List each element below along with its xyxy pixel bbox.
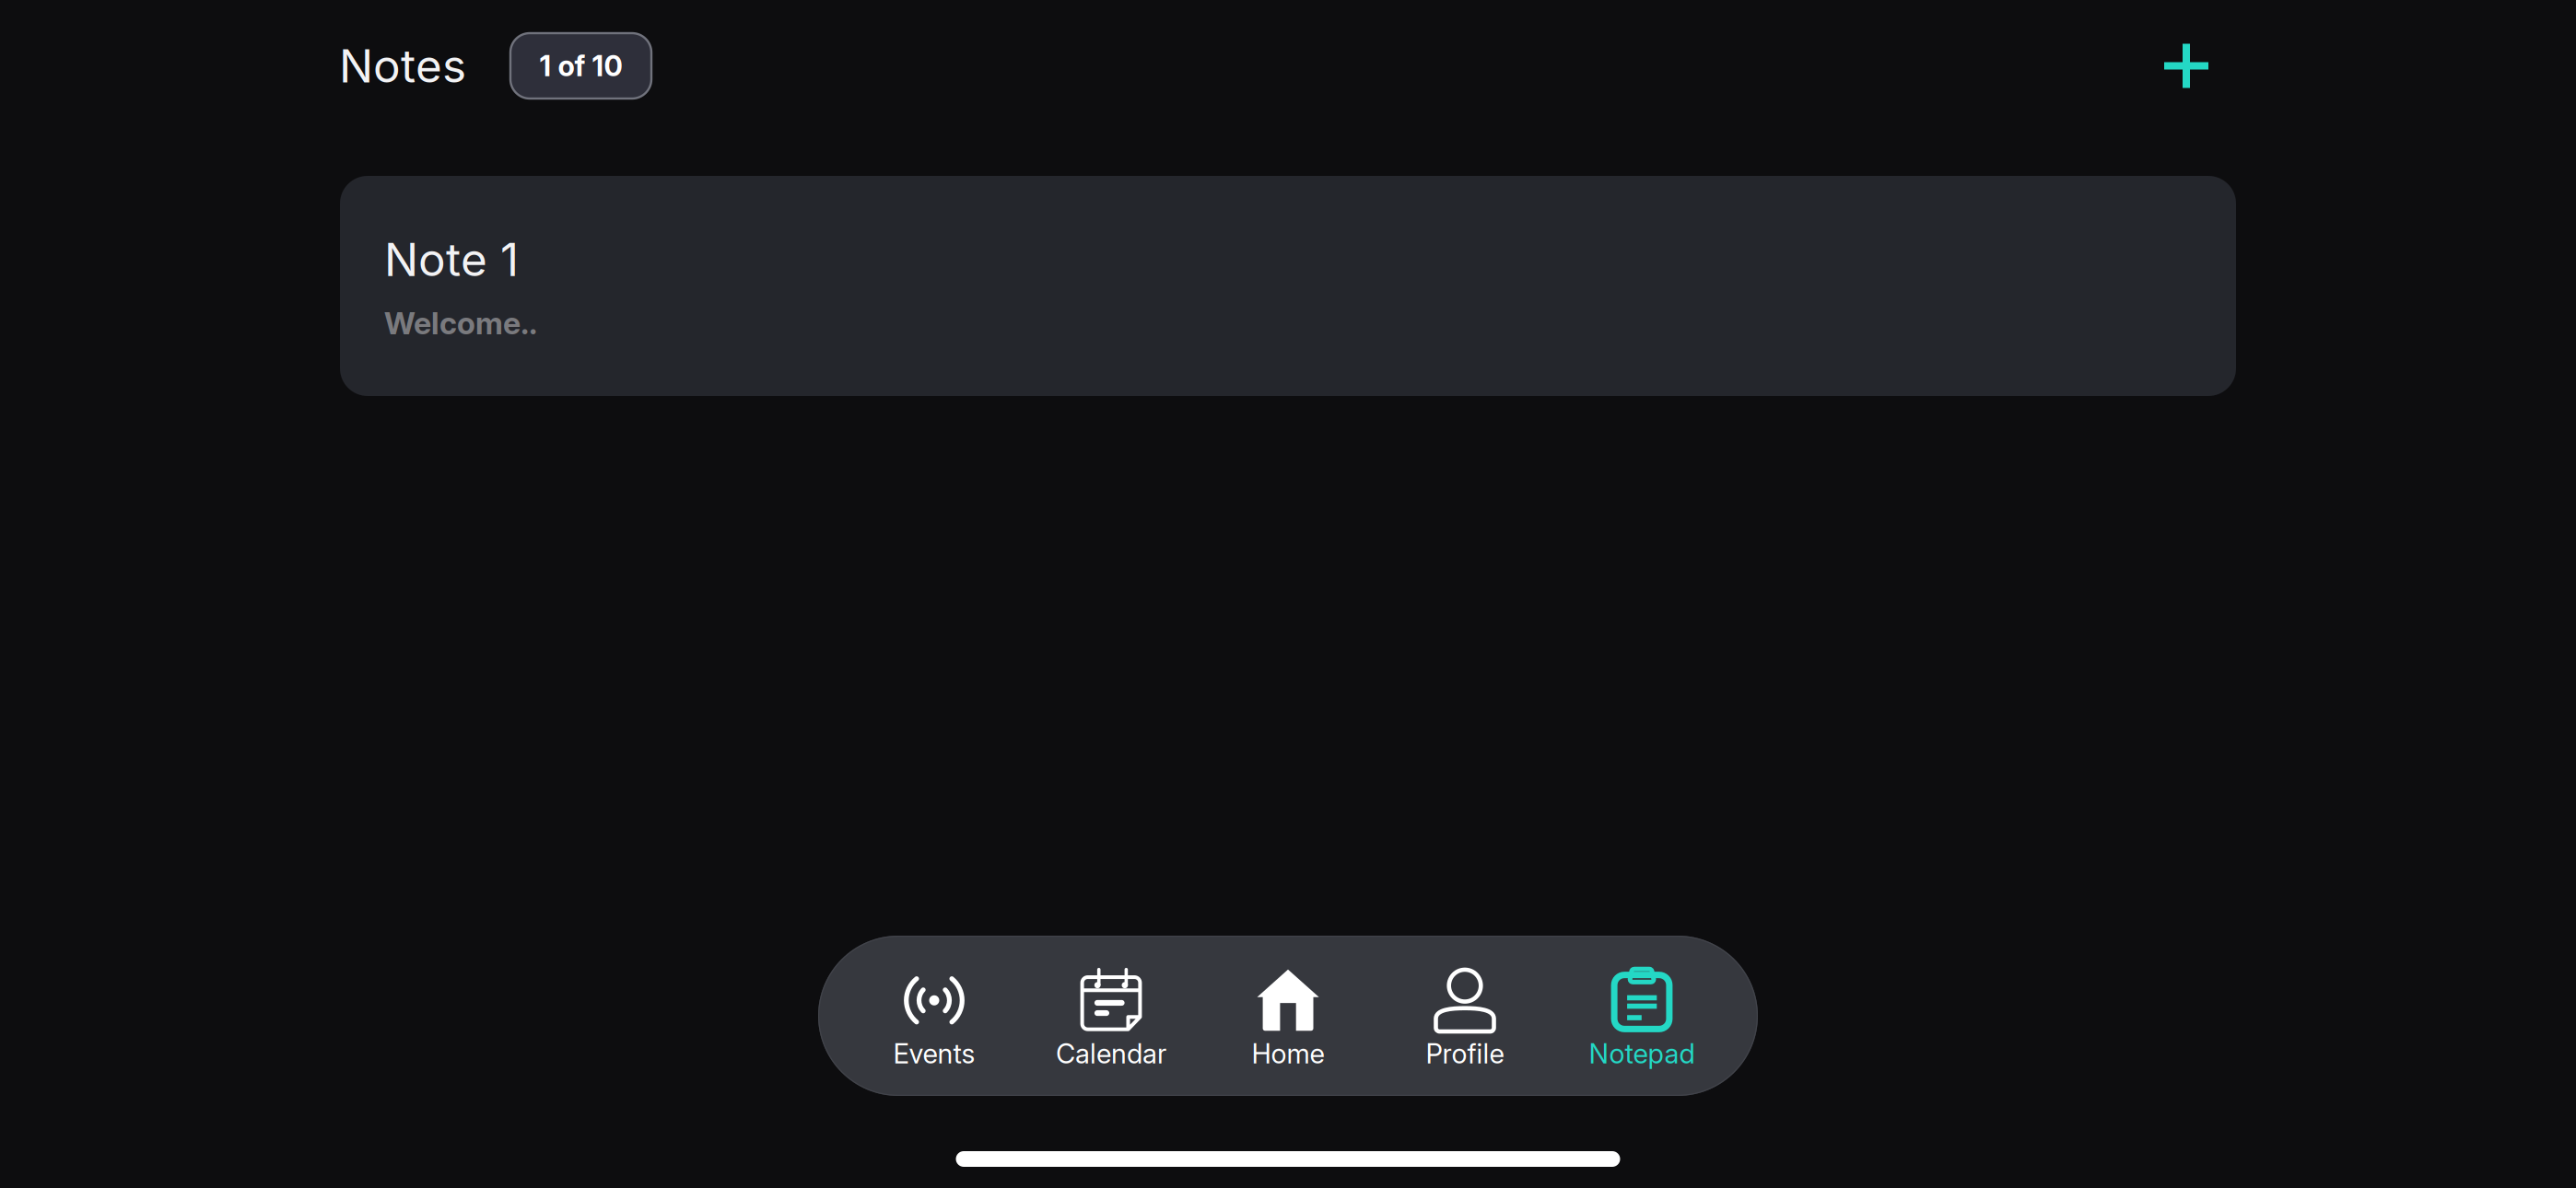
- staticText: Profile: [1426, 1037, 1504, 1070]
- button[interactable]: Calendar: [1023, 936, 1200, 1096]
- button[interactable]: Profile: [1376, 936, 1553, 1096]
- staticText: Calendar: [1056, 1037, 1166, 1070]
- staticText: 1 of 10: [539, 49, 622, 83]
- button[interactable]: 1 of 10: [510, 33, 651, 99]
- button[interactable]: Notepad: [1553, 936, 1730, 1096]
- staticText: Events: [893, 1037, 975, 1070]
- staticText: Notes: [339, 38, 466, 93]
- staticText: Notepad: [1589, 1037, 1695, 1070]
- button[interactable]: Note 1: [340, 176, 2236, 396]
- button[interactable]: New note: [2159, 38, 2214, 93]
- staticText: Welcome..: [384, 305, 537, 342]
- button[interactable]: Home: [1200, 936, 1376, 1096]
- staticText: Note 1: [384, 232, 519, 287]
- staticText: Home: [1252, 1037, 1324, 1070]
- button[interactable]: Events: [846, 936, 1023, 1096]
